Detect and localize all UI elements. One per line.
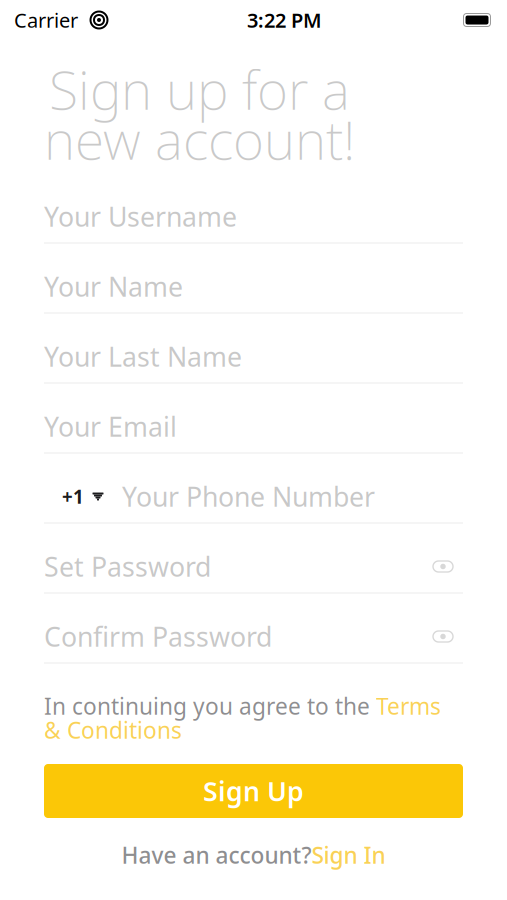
staticText: Confirm Password bbox=[44, 619, 272, 654]
staticText: Your Username bbox=[44, 199, 237, 234]
staticText: Sign up for a bbox=[49, 54, 350, 124]
button[interactable]: Country code +1 bbox=[44, 474, 122, 518]
staticText: new account! bbox=[44, 104, 355, 174]
staticText: Terms bbox=[376, 691, 441, 721]
staticText: Your Phone Number bbox=[122, 479, 375, 514]
button[interactable]: Sign Up bbox=[44, 764, 463, 818]
staticText: +1 bbox=[62, 484, 84, 509]
button[interactable]: Show password bbox=[423, 546, 463, 586]
staticText: Your Email bbox=[44, 409, 177, 444]
staticText: Your Last Name bbox=[44, 339, 242, 374]
staticText: Sign In bbox=[311, 840, 385, 870]
staticText: Set Password bbox=[44, 549, 211, 584]
staticText: Carrier bbox=[14, 7, 78, 33]
button[interactable]: & Conditions bbox=[44, 718, 463, 742]
staticText: 3:22 PM bbox=[247, 7, 322, 33]
button[interactable]: Show password bbox=[423, 616, 463, 656]
staticText: In continuing you agree to the bbox=[44, 691, 376, 721]
staticText: Sign Up bbox=[203, 773, 304, 809]
staticText: Your Name bbox=[44, 269, 183, 304]
button[interactable]: Sign In bbox=[311, 840, 385, 870]
button[interactable]: Terms bbox=[376, 691, 441, 721]
staticText: & Conditions bbox=[44, 715, 182, 745]
staticText: Have an account? bbox=[121, 840, 311, 870]
